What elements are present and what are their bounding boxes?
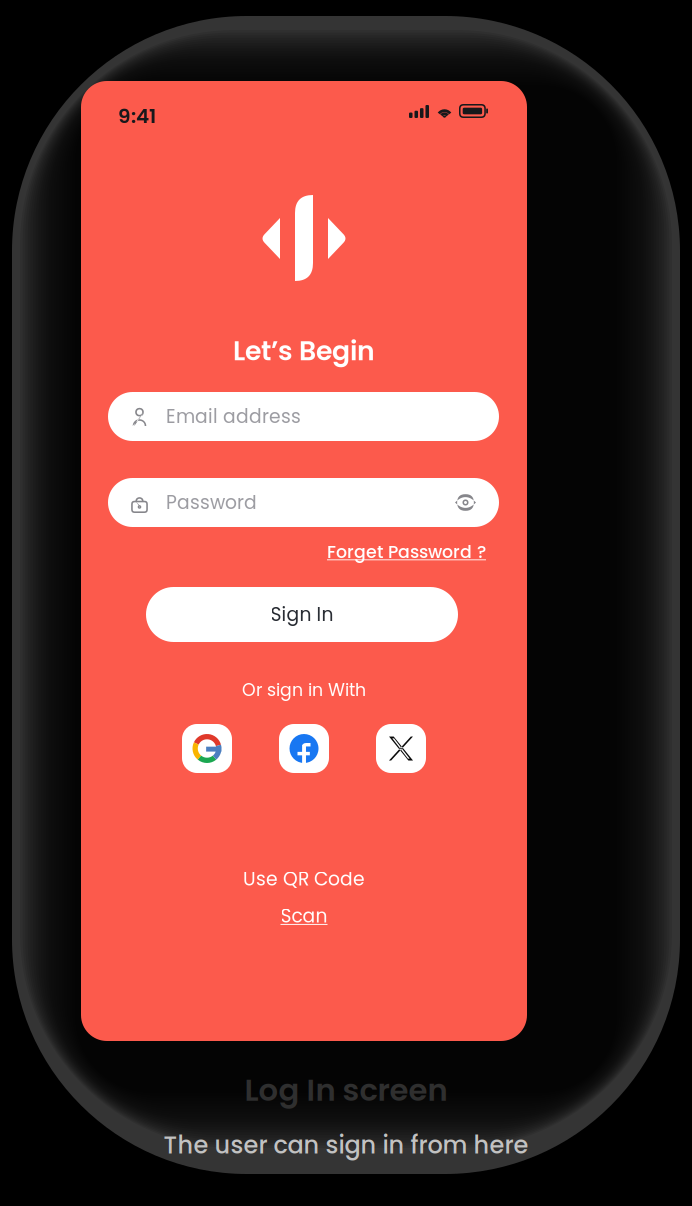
button[interactable]: Password	[108, 478, 499, 527]
button[interactable]: Forget Password ?	[108, 540, 486, 564]
button[interactable]: Email address	[108, 392, 499, 441]
button[interactable]: Sign in with Google	[182, 724, 232, 773]
staticText: Use QR Code	[243, 866, 365, 892]
staticText: Or sign in With	[242, 678, 366, 702]
staticText: Email address	[166, 403, 301, 429]
staticText: The user can sign in from here	[163, 1128, 528, 1162]
staticText: 9:41	[118, 102, 156, 130]
button[interactable]: Scan	[81, 903, 527, 929]
staticText: Log In screen	[244, 1068, 447, 1111]
button[interactable]: Sign in with X	[376, 724, 426, 773]
button[interactable]: Sign in with Facebook	[279, 724, 329, 773]
staticText: Scan	[280, 903, 327, 929]
button[interactable]: Sign In	[146, 587, 458, 642]
staticText: Password	[166, 489, 257, 515]
staticText: Let’s Begin	[233, 332, 375, 370]
staticText: Forget Password ?	[327, 540, 486, 564]
staticText: Sign In	[270, 601, 333, 627]
